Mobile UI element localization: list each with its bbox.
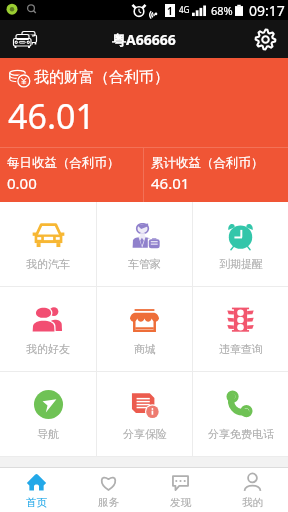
staticText: 46.01: [8, 93, 95, 139]
staticText: 46.01: [151, 173, 190, 193]
staticText: 0.00: [7, 173, 37, 193]
staticText: 分享免费电话: [208, 427, 274, 441]
staticText: 服务: [98, 496, 119, 509]
staticText: 首页: [26, 496, 47, 509]
staticText: 发现: [170, 496, 191, 509]
staticText: 分享保险: [123, 427, 167, 441]
button[interactable]: 违章查询: [193, 287, 288, 371]
staticText: 4G: [179, 4, 190, 15]
staticText: 我的: [242, 496, 263, 509]
staticText: 我的汽车: [26, 257, 70, 271]
staticText: 09:17: [249, 1, 285, 20]
staticText: 1: [167, 4, 173, 17]
button[interactable]: My vehicles: [6, 21, 42, 57]
button[interactable]: 我的汽车: [0, 202, 96, 286]
staticText: 我的财富（合利币）: [34, 68, 169, 87]
button[interactable]: 我的好友: [0, 287, 96, 371]
staticText: 我的好友: [26, 342, 70, 356]
button[interactable]: 发现: [144, 468, 216, 512]
staticText: 粤A66666: [112, 30, 176, 49]
button[interactable]: 商城: [97, 287, 192, 371]
button[interactable]: 首页: [0, 468, 72, 512]
staticText: 商城: [134, 342, 156, 356]
staticText: 每日收益（合利币）: [7, 155, 120, 171]
button[interactable]: 分享保险: [97, 372, 192, 456]
button[interactable]: 导航: [0, 372, 96, 456]
button[interactable]: Settings: [249, 23, 281, 55]
staticText: 车管家: [128, 257, 161, 271]
staticText: 违章查询: [219, 342, 263, 356]
button[interactable]: 服务: [72, 468, 144, 512]
staticText: 累计收益（合利币）: [151, 155, 264, 171]
button[interactable]: 我的: [216, 468, 288, 512]
staticText: 到期提醒: [219, 257, 263, 271]
button[interactable]: 车管家: [97, 202, 192, 286]
staticText: 导航: [37, 427, 59, 441]
button[interactable]: 分享免费电话: [193, 372, 288, 456]
button[interactable]: 到期提醒: [193, 202, 288, 286]
staticText: 68%: [211, 3, 233, 18]
